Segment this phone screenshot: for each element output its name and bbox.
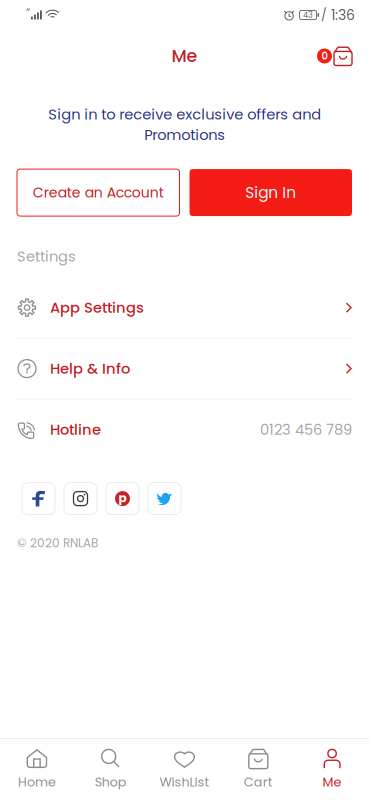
staticText: Create an Account	[33, 183, 164, 202]
staticText: App Settings	[50, 297, 144, 318]
staticText: Shop	[95, 773, 127, 791]
staticText: Settings	[17, 246, 76, 267]
staticText: “	[26, 5, 30, 20]
staticText: Me	[323, 773, 342, 791]
staticText: Help & Info	[50, 358, 130, 379]
button[interactable]: Home	[0, 739, 74, 800]
staticText: Sign In	[245, 182, 296, 203]
button[interactable]: App Settings	[0, 278, 369, 338]
button[interactable]: WishList	[148, 739, 221, 800]
staticText: WishList	[159, 773, 209, 791]
staticText: Cart	[244, 773, 273, 791]
button[interactable]: Help & Info	[0, 339, 369, 399]
staticText: p	[118, 490, 126, 506]
staticText: 1:36	[331, 5, 355, 25]
button[interactable]: Facebook	[22, 483, 55, 515]
button[interactable]: Shop	[74, 739, 148, 800]
button[interactable]: Create an Account	[17, 169, 179, 216]
staticText: 43	[303, 9, 313, 21]
button[interactable]: Cart	[317, 46, 352, 65]
button[interactable]: Pinterest	[106, 483, 139, 515]
staticText: © 2020 RNLAB	[17, 535, 98, 551]
button[interactable]: Hotline	[0, 400, 369, 460]
button[interactable]: Twitter	[148, 483, 181, 515]
button[interactable]: Sign In	[189, 169, 352, 216]
staticText: 0123 456 789	[260, 419, 352, 440]
staticText: Sign in to receive exclusive offers and …	[48, 104, 321, 145]
button[interactable]: Instagram	[64, 483, 97, 515]
staticText: Home	[18, 773, 56, 791]
button[interactable]: Cart	[221, 739, 295, 800]
button[interactable]: Me	[295, 739, 369, 800]
staticText: Me	[171, 44, 197, 68]
staticText: 0	[321, 49, 327, 63]
staticText: /	[321, 7, 327, 23]
staticText: Hotline	[50, 419, 101, 440]
